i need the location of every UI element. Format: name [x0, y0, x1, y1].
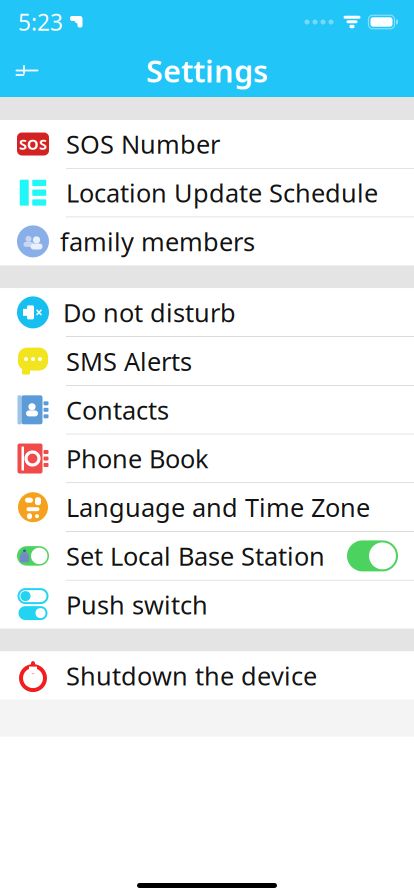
staticText: Settings — [146, 50, 268, 91]
staticText: Shutdown the device — [66, 659, 317, 692]
staticText: Do not disturb — [63, 296, 236, 329]
staticText: Push switch — [66, 588, 208, 621]
staticText: Set Local Base Station — [66, 539, 325, 573]
button[interactable]: SMS Alerts — [0, 337, 414, 385]
staticText: SOS Number — [66, 127, 220, 161]
staticText: SMS Alerts — [66, 344, 192, 378]
button[interactable]: SOS — [0, 120, 414, 168]
button[interactable]: Shutdown the device — [0, 652, 414, 700]
staticText: Phone Book — [66, 442, 209, 475]
button[interactable]: Language and Time Zone — [0, 483, 414, 531]
button[interactable]: Phone Book — [0, 434, 414, 482]
staticText: Contacts — [66, 393, 169, 427]
button[interactable]: Location Update Schedule — [0, 169, 414, 217]
button[interactable]: family members — [0, 217, 414, 265]
button[interactable]: Contacts — [0, 386, 414, 434]
staticText: family members — [60, 225, 255, 258]
staticText: Language and Time Zone — [66, 490, 370, 524]
staticText: 5:23 — [18, 7, 63, 37]
button[interactable]: Back — [0, 44, 54, 97]
button[interactable]: × — [0, 288, 414, 336]
button[interactable]: Push switch — [0, 581, 414, 629]
button[interactable]: Set Local Base Station — [0, 532, 414, 580]
staticText: SOS — [19, 134, 47, 154]
staticText: × — [35, 303, 43, 321]
staticText: Location Update Schedule — [66, 176, 378, 209]
